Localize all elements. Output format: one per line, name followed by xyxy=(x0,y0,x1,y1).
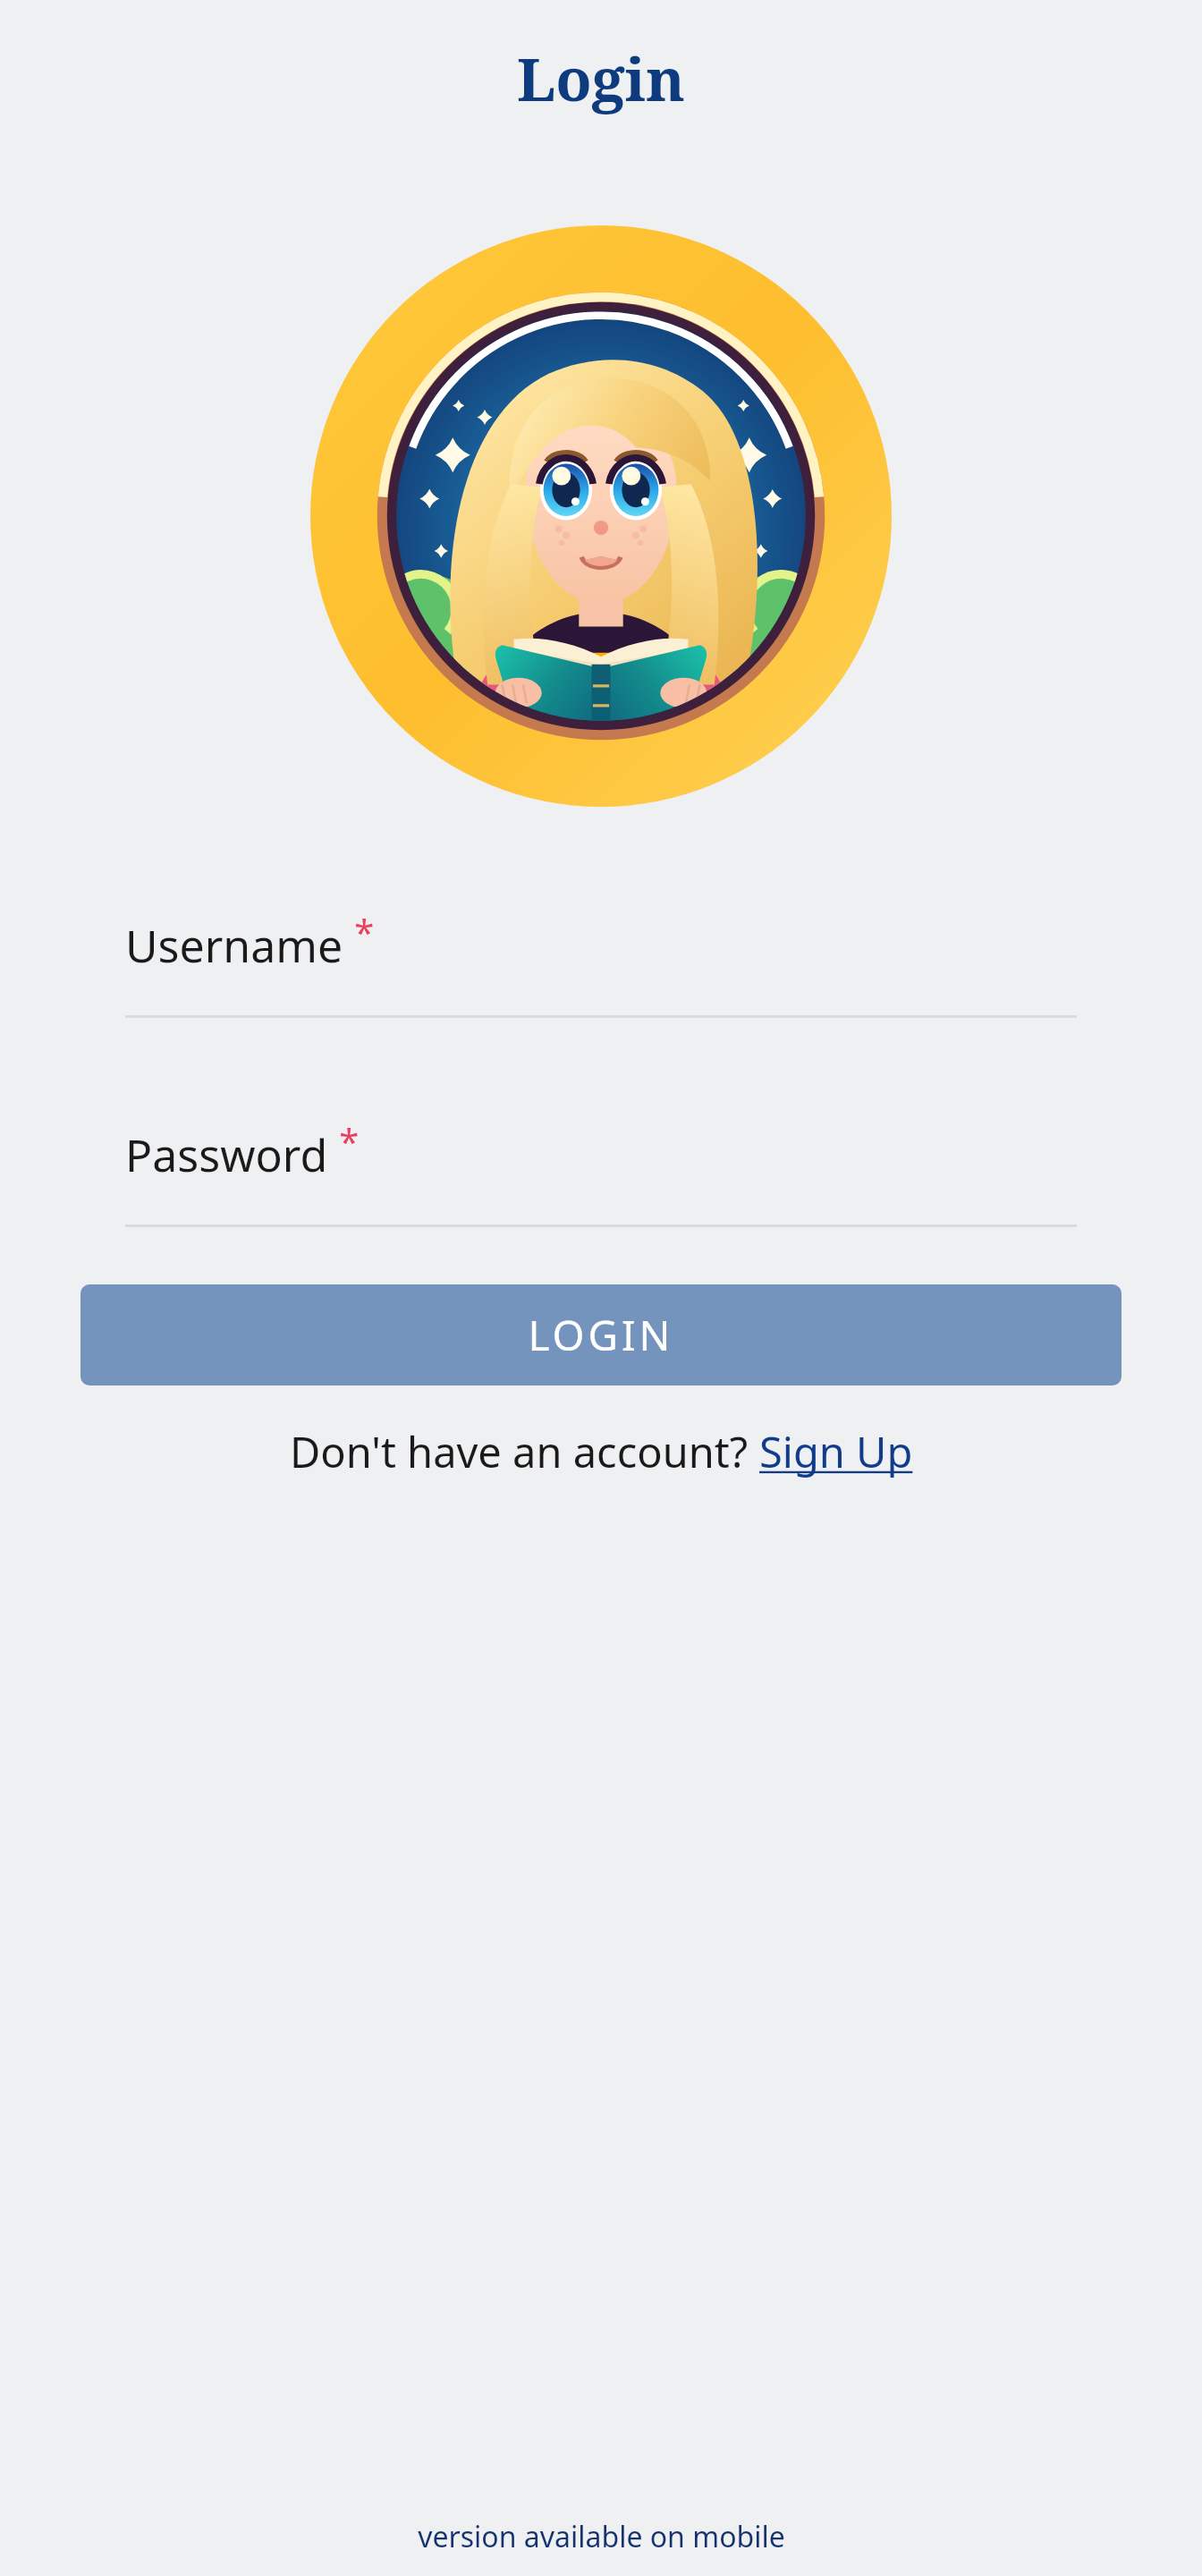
staticText: Username * xyxy=(125,907,375,976)
button[interactable]: Password * xyxy=(125,1116,1077,1227)
staticText: Don't have an account? xyxy=(290,1423,759,1480)
button[interactable]: LOGIN xyxy=(80,1284,1122,1385)
staticText: Login xyxy=(517,38,685,118)
staticText: Password * xyxy=(125,1116,360,1185)
button[interactable]: Sign Up xyxy=(759,1423,913,1480)
staticText: Sign Up xyxy=(759,1423,913,1480)
button[interactable]: Username * xyxy=(125,907,1077,1018)
staticText: LOGIN xyxy=(528,1307,674,1363)
staticText: version available on mobile xyxy=(418,2517,785,2556)
